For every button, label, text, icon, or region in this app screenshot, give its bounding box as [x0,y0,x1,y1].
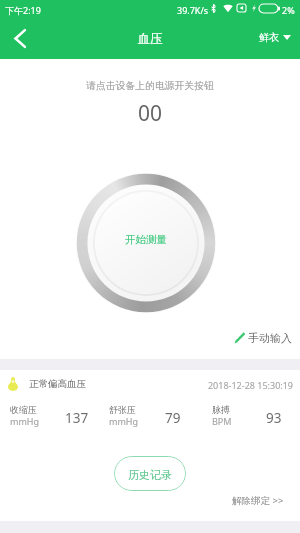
staticText: 2% [282,4,295,16]
staticText: 手动输入 [248,331,292,345]
staticText: mmHg [10,415,40,427]
staticText: 舒张压 [109,404,136,415]
staticText: 93 [266,409,282,427]
staticText: 137 [65,409,89,427]
staticText: 79 [165,409,181,427]
button[interactable]: 鲜衣 [259,31,291,44]
staticText: mmHg [109,415,139,427]
staticText: 2018-12-28 15:30:19 [0,379,293,391]
button[interactable]: 手动输入 [234,331,292,345]
staticText: 历史记录 [128,468,172,482]
staticText: 收缩压 [10,404,37,415]
button[interactable]: 解除绑定 >> [232,494,284,507]
staticText: 鲜衣 [259,31,279,44]
staticText: 00 [0,99,300,128]
staticText: 开始测量 [125,233,167,246]
staticText: 39.7K/s [177,4,209,16]
staticText: 正常偏高血压 [29,378,86,390]
staticText: 脉搏 [212,404,230,415]
staticText: BPM [212,415,232,427]
staticText: 请点击设备上的电源开关按钮 [0,80,300,92]
staticText: 血压 [0,31,300,47]
button[interactable]: Back [6,24,34,52]
staticText: 下午2:19 [5,4,41,16]
button[interactable]: 历史记录 [114,456,186,491]
